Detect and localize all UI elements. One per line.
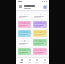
button[interactable] bbox=[33, 21, 47, 28]
button[interactable]: Menu bbox=[18, 4, 23, 9]
button[interactable]: Explore bbox=[26, 58, 32, 64]
button[interactable] bbox=[33, 13, 47, 19]
button[interactable]: Home bbox=[18, 58, 24, 64]
button[interactable] bbox=[18, 13, 31, 19]
button[interactable] bbox=[33, 39, 47, 46]
button[interactable] bbox=[33, 48, 47, 55]
button[interactable] bbox=[18, 39, 31, 46]
button[interactable] bbox=[18, 30, 31, 37]
button[interactable] bbox=[33, 30, 47, 37]
button[interactable] bbox=[18, 21, 31, 28]
button[interactable] bbox=[18, 48, 31, 55]
button[interactable]: Settings bbox=[41, 58, 47, 64]
button[interactable]: Profile bbox=[43, 5, 47, 9]
button[interactable]: Library bbox=[33, 58, 39, 64]
